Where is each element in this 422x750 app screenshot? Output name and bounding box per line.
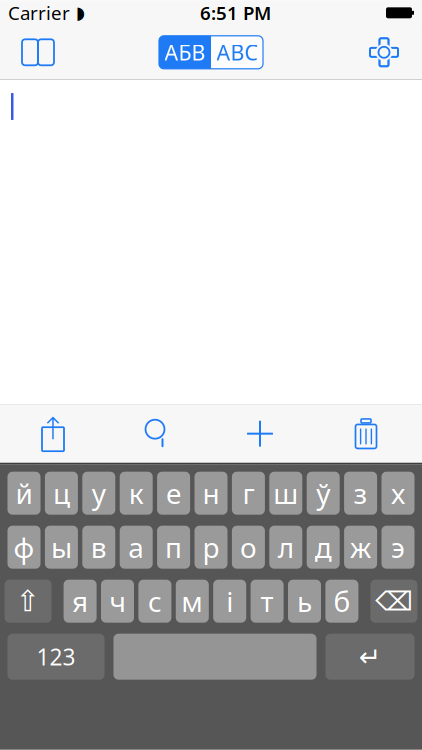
button[interactable]: о [232, 526, 265, 569]
button[interactable]: ц [45, 472, 78, 515]
button[interactable]: й [7, 472, 40, 515]
button[interactable]: Add [207, 405, 313, 463]
staticText: ↵ [359, 642, 381, 672]
button[interactable]: х [381, 472, 414, 515]
button[interactable]: к [120, 472, 153, 515]
button[interactable]: п [157, 526, 190, 569]
button[interactable]: ы [45, 526, 78, 569]
staticText: т [261, 583, 274, 620]
staticText: а [128, 529, 144, 566]
staticText: АБВ [164, 38, 205, 66]
staticText: я [72, 583, 88, 620]
button[interactable]: у [82, 472, 115, 515]
button[interactable]: Library [8, 25, 68, 79]
staticText: ⌫ [375, 586, 413, 616]
staticText: ч [109, 583, 125, 620]
staticText: ц [53, 475, 70, 512]
button[interactable]: ь [288, 580, 321, 623]
staticText: й [15, 475, 32, 512]
staticText: м [181, 583, 203, 620]
button[interactable]: а [120, 526, 153, 569]
button[interactable]: Share [3, 405, 103, 463]
button[interactable]: ў [307, 472, 340, 515]
button[interactable]: Delete [313, 405, 419, 463]
button[interactable]: і [213, 580, 246, 623]
button[interactable]: н [194, 472, 227, 515]
staticText: ь [297, 583, 312, 620]
staticText: с [148, 583, 162, 620]
button[interactable]: р [194, 526, 227, 569]
staticText: ABC [216, 38, 257, 66]
button[interactable]: 123 [7, 634, 104, 680]
staticText: 6:51 PM [200, 0, 271, 25]
staticText: ш [273, 475, 298, 512]
staticText: п [165, 529, 182, 566]
staticText: і [226, 583, 233, 620]
staticText: в [91, 529, 107, 566]
button[interactable]: б [325, 580, 358, 623]
button[interactable]: Search [103, 405, 207, 463]
staticText: Carrier [8, 0, 70, 25]
button[interactable]: Space [113, 634, 316, 680]
button[interactable]: Return [325, 634, 414, 680]
staticText: э [391, 529, 405, 566]
button[interactable]: г [232, 472, 265, 515]
staticText: д [315, 529, 332, 566]
button[interactable]: д [307, 526, 340, 569]
button[interactable]: ABC [211, 36, 263, 69]
staticText: 123 [36, 642, 75, 672]
button[interactable]: я [64, 580, 97, 623]
staticText: ж [350, 529, 371, 566]
button[interactable]: т [251, 580, 284, 623]
button[interactable]: Backspace [370, 580, 417, 623]
staticText: у [92, 475, 106, 512]
staticText: ↑ [40, 411, 66, 446]
button[interactable]: с [138, 580, 171, 623]
staticText: к [129, 475, 144, 512]
button[interactable]: е [157, 472, 190, 515]
staticText: н [202, 475, 219, 512]
button[interactable]: АБВ [159, 36, 211, 69]
staticText: ў [316, 475, 330, 512]
staticText: г [242, 475, 254, 512]
button[interactable]: ф [7, 526, 40, 569]
button[interactable]: з [344, 472, 377, 515]
staticText: л [278, 529, 294, 566]
button[interactable]: в [82, 526, 115, 569]
staticText: ◗ [76, 3, 85, 23]
staticText: ⇧ [16, 585, 41, 618]
staticText: р [202, 529, 219, 566]
button[interactable]: ч [101, 580, 134, 623]
button[interactable]: м [176, 580, 209, 623]
button[interactable]: Settings [354, 25, 414, 79]
staticText: х [391, 475, 405, 512]
staticText: з [354, 475, 368, 512]
button[interactable]: Shift [5, 580, 52, 623]
button[interactable]: ш [269, 472, 302, 515]
staticText: ф [13, 529, 34, 566]
staticText: ы [51, 529, 72, 566]
button[interactable]: ж [344, 526, 377, 569]
button[interactable]: л [269, 526, 302, 569]
button[interactable]: э [381, 526, 414, 569]
staticText: о [240, 529, 257, 566]
staticText: е [166, 475, 181, 512]
staticText: б [333, 583, 350, 620]
